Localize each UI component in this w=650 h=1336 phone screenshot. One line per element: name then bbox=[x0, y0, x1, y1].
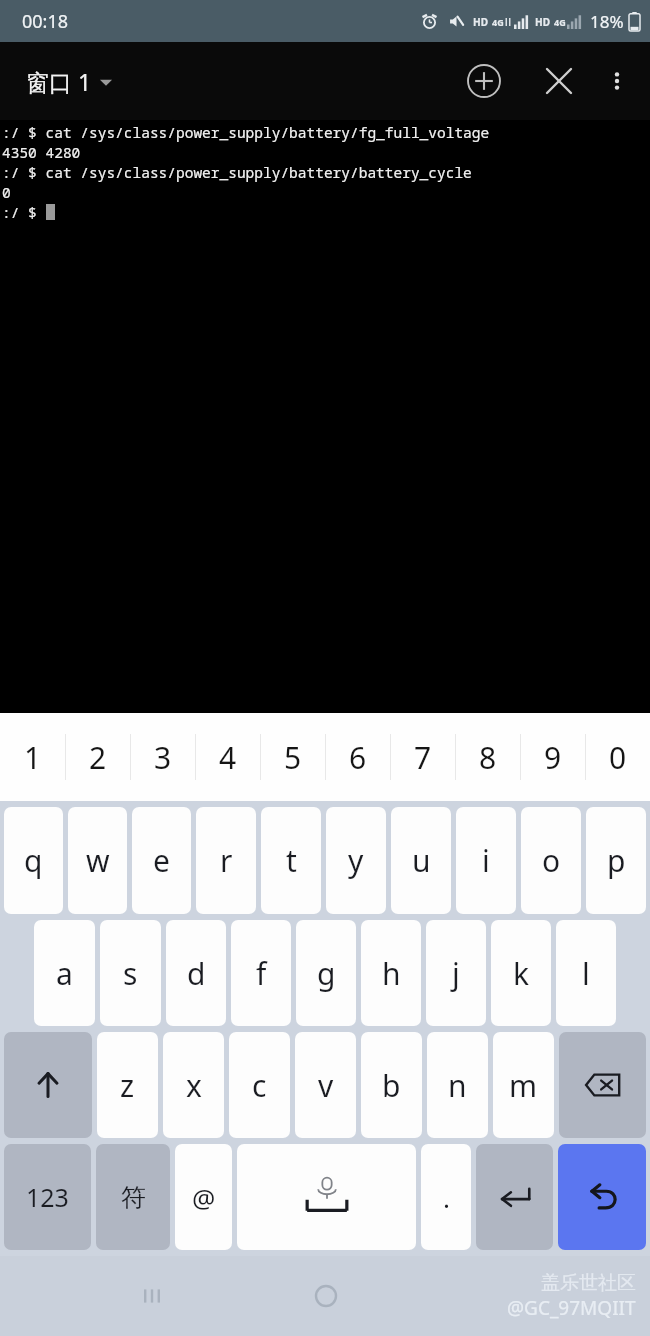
button[interactable]: t bbox=[261, 807, 321, 914]
staticText: s bbox=[123, 953, 138, 994]
button[interactable]: 0 bbox=[585, 713, 650, 801]
staticText: :/ $ cat /sys/class/power_supply/battery… bbox=[2, 122, 490, 142]
button[interactable]: Space bbox=[237, 1144, 416, 1250]
staticText: HD bbox=[535, 15, 550, 29]
staticText: 9 bbox=[544, 737, 562, 778]
staticText: j bbox=[452, 953, 460, 994]
button[interactable]: n bbox=[427, 1032, 488, 1138]
staticText: :/ $ bbox=[2, 202, 46, 222]
button[interactable]: j bbox=[426, 920, 486, 1026]
button[interactable]: m bbox=[493, 1032, 554, 1138]
button[interactable]: c bbox=[229, 1032, 290, 1138]
button[interactable]: a bbox=[34, 920, 95, 1026]
button[interactable]: g bbox=[296, 920, 356, 1026]
button[interactable]: 8 bbox=[455, 713, 520, 801]
staticText: t bbox=[286, 840, 297, 881]
button[interactable]: u bbox=[391, 807, 451, 914]
staticText: q bbox=[24, 840, 43, 881]
button[interactable]: 2 bbox=[65, 713, 130, 801]
button[interactable]: h bbox=[361, 920, 421, 1026]
staticText: w bbox=[86, 840, 110, 881]
button[interactable]: More options bbox=[592, 56, 642, 106]
button[interactable]: . bbox=[421, 1144, 471, 1250]
staticText: v bbox=[318, 1065, 334, 1106]
button[interactable]: Undo bbox=[558, 1144, 646, 1250]
button[interactable]: z bbox=[97, 1032, 158, 1138]
staticText: 4G bbox=[554, 16, 566, 28]
staticText: 窗口 1 bbox=[26, 66, 92, 97]
button[interactable]: New window bbox=[456, 53, 512, 109]
staticText: p bbox=[607, 840, 626, 881]
button[interactable]: 123 bbox=[4, 1144, 91, 1250]
staticText: 1 bbox=[24, 737, 42, 778]
staticText: 18% bbox=[590, 10, 624, 33]
staticText: m bbox=[509, 1065, 538, 1106]
button[interactable]: d bbox=[166, 920, 226, 1026]
button[interactable]: q bbox=[4, 807, 63, 914]
button[interactable]: Home bbox=[298, 1268, 354, 1324]
staticText: r bbox=[220, 840, 233, 881]
button[interactable]: r bbox=[196, 807, 256, 914]
button[interactable]: Enter bbox=[476, 1144, 553, 1250]
button[interactable]: Recents bbox=[124, 1268, 180, 1324]
staticText: 0 bbox=[2, 182, 11, 202]
staticText: h bbox=[382, 953, 401, 994]
button[interactable]: 7 bbox=[390, 713, 455, 801]
staticText: g bbox=[317, 953, 336, 994]
button[interactable]: 符 bbox=[96, 1144, 170, 1250]
button[interactable]: 6 bbox=[325, 713, 390, 801]
staticText: 4 bbox=[219, 737, 237, 778]
staticText: o bbox=[542, 840, 561, 881]
staticText: 符 bbox=[121, 1182, 146, 1213]
button[interactable]: e bbox=[132, 807, 191, 914]
button[interactable]: 1 bbox=[0, 713, 65, 801]
button[interactable]: Backspace bbox=[559, 1032, 646, 1138]
staticText: 盖乐世社区 bbox=[541, 1271, 636, 1295]
staticText: n bbox=[448, 1065, 467, 1106]
staticText: 00:18 bbox=[22, 9, 69, 34]
staticText: d bbox=[187, 953, 206, 994]
button[interactable]: k bbox=[491, 920, 551, 1026]
button[interactable]: y bbox=[326, 807, 386, 914]
staticText: 7 bbox=[414, 737, 432, 778]
button[interactable]: b bbox=[361, 1032, 422, 1138]
staticText: HD bbox=[473, 15, 488, 29]
button[interactable]: 4 bbox=[195, 713, 260, 801]
button[interactable]: v bbox=[295, 1032, 356, 1138]
button[interactable]: 3 bbox=[130, 713, 195, 801]
button[interactable]: l bbox=[556, 920, 616, 1026]
button[interactable]: p bbox=[586, 807, 646, 914]
button[interactable]: s bbox=[100, 920, 161, 1026]
staticText: x bbox=[186, 1065, 202, 1106]
staticText: 4G bbox=[492, 16, 504, 28]
staticText: 4350 4280 bbox=[2, 142, 81, 162]
staticText: 2 bbox=[89, 737, 107, 778]
staticText: c bbox=[252, 1065, 267, 1106]
staticText: y bbox=[348, 840, 364, 881]
staticText: z bbox=[120, 1065, 135, 1106]
button[interactable]: @ bbox=[175, 1144, 232, 1250]
button[interactable]: w bbox=[68, 807, 127, 914]
button[interactable]: 9 bbox=[520, 713, 585, 801]
button[interactable]: Close bbox=[534, 56, 584, 106]
staticText: e bbox=[153, 840, 170, 881]
staticText: :/ $ cat /sys/class/power_supply/battery… bbox=[2, 162, 472, 182]
staticText: @GC_97MQIIT bbox=[507, 1295, 636, 1321]
staticText: @ bbox=[192, 1180, 216, 1215]
button[interactable]: 窗口 1 bbox=[26, 66, 114, 97]
button[interactable]: o bbox=[521, 807, 581, 914]
staticText: 3 bbox=[154, 737, 172, 778]
staticText: l bbox=[582, 953, 590, 994]
staticText: u bbox=[412, 840, 431, 881]
staticText: 0 bbox=[609, 737, 627, 778]
staticText: . bbox=[443, 1180, 450, 1215]
staticText: a bbox=[56, 953, 73, 994]
button[interactable]: Shift bbox=[4, 1032, 92, 1138]
button[interactable]: 5 bbox=[260, 713, 325, 801]
button[interactable]: x bbox=[163, 1032, 224, 1138]
staticText: k bbox=[513, 953, 530, 994]
staticText: 8 bbox=[479, 737, 497, 778]
button[interactable]: i bbox=[456, 807, 516, 914]
button[interactable]: f bbox=[231, 920, 291, 1026]
staticText: 6 bbox=[349, 737, 367, 778]
